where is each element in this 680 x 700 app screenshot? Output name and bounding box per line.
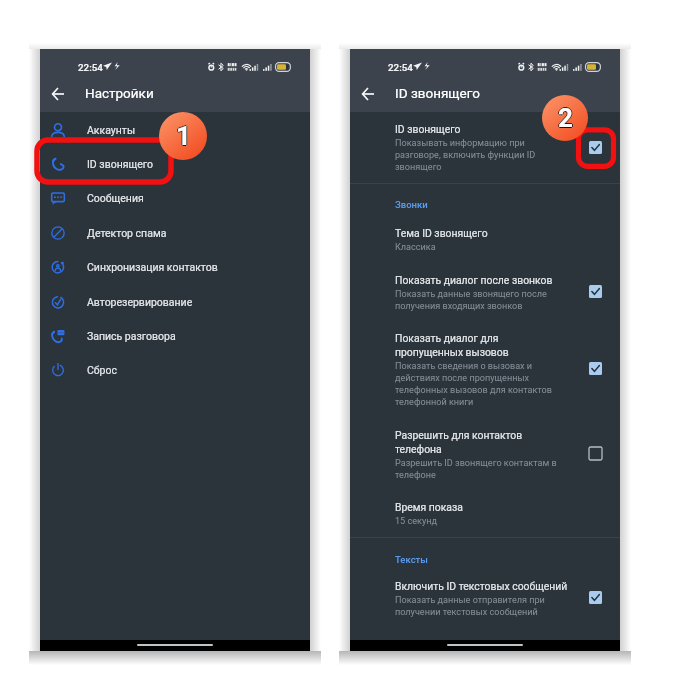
staticText: Сообщения xyxy=(87,192,144,204)
staticText: Сброс xyxy=(87,364,117,376)
button[interactable]: Тема ID звонящего xyxy=(350,221,620,247)
button[interactable]: Сообщения xyxy=(40,181,310,215)
staticText: Разрешить для контактов телефона xyxy=(395,429,569,455)
staticText: Синхронизация контактов xyxy=(87,261,218,273)
staticText: Классика xyxy=(395,242,436,253)
button[interactable]: Синхронизация контактов xyxy=(40,250,310,284)
staticText: 1 xyxy=(176,122,191,152)
staticText: Показать диалог после звонков xyxy=(395,274,553,286)
staticText: Показать сведения о вызовах и действиях … xyxy=(395,361,569,407)
button[interactable]: Детектор спама xyxy=(40,216,310,250)
staticText: 22:54 xyxy=(78,62,103,73)
button[interactable]: Время показа xyxy=(350,495,620,521)
staticText: Тексты xyxy=(395,554,428,565)
staticText: Аккаунты xyxy=(87,124,136,136)
staticText: Время показа xyxy=(395,501,463,513)
button[interactable]: Разрешить для контактов телефона xyxy=(350,423,620,474)
staticText: Показать данные отправителя при получени… xyxy=(395,595,569,617)
staticText: 1 xyxy=(175,121,190,151)
button[interactable]: Toggle xyxy=(584,136,606,158)
button[interactable]: Back xyxy=(44,80,72,108)
staticText: Тема ID звонящего xyxy=(395,227,488,239)
staticText: 15 секунд xyxy=(395,516,438,527)
staticText: Показать данные звонящего после получени… xyxy=(395,289,569,311)
button[interactable]: Сброс xyxy=(40,353,310,387)
staticText: Показывать информацию при разговоре, вкл… xyxy=(395,138,569,172)
button[interactable]: Запись разговора xyxy=(40,319,310,353)
staticText: 1 xyxy=(177,121,192,151)
button[interactable]: Включить ID текстовых сообщений xyxy=(350,574,620,611)
staticText: 2 xyxy=(558,102,573,132)
staticText: Авторезервирование xyxy=(87,296,193,308)
staticText: 2 xyxy=(558,104,573,134)
button[interactable]: Показать диалог после звонков xyxy=(350,268,620,305)
button[interactable]: Back xyxy=(354,80,382,108)
staticText: Запись разговора xyxy=(87,330,176,342)
staticText: 22:54 xyxy=(388,62,413,73)
staticText: Звонки xyxy=(395,199,428,210)
button[interactable]: Toggle xyxy=(584,357,606,379)
staticText: Показать диалог для пропущенных вызовов xyxy=(395,332,569,358)
staticText: 1 xyxy=(176,121,191,151)
staticText: Детектор спама xyxy=(87,227,167,239)
staticText: Настройки xyxy=(85,85,154,101)
staticText: ID звонящего xyxy=(87,158,154,170)
staticText: Разрешить ID звонящего контактам в телеф… xyxy=(395,458,569,480)
staticText: 2 xyxy=(559,103,574,133)
staticText: 1 xyxy=(176,120,191,150)
button[interactable]: Toggle xyxy=(584,442,606,464)
button[interactable]: Показать диалог для пропущенных вызовов xyxy=(350,326,620,401)
button[interactable]: Toggle xyxy=(584,280,606,302)
button[interactable]: ID звонящего xyxy=(350,117,620,166)
staticText: ID звонящего xyxy=(395,85,480,101)
staticText: 2 xyxy=(558,103,573,133)
staticText: ID звонящего xyxy=(395,123,461,135)
button[interactable]: ID звонящего xyxy=(40,147,310,181)
button[interactable]: Аккаунты xyxy=(40,113,310,147)
button[interactable]: Toggle xyxy=(584,586,606,608)
staticText: 2 xyxy=(557,103,572,133)
staticText: Включить ID текстовых сообщений xyxy=(395,580,568,592)
button[interactable]: Авторезервирование xyxy=(40,285,310,319)
